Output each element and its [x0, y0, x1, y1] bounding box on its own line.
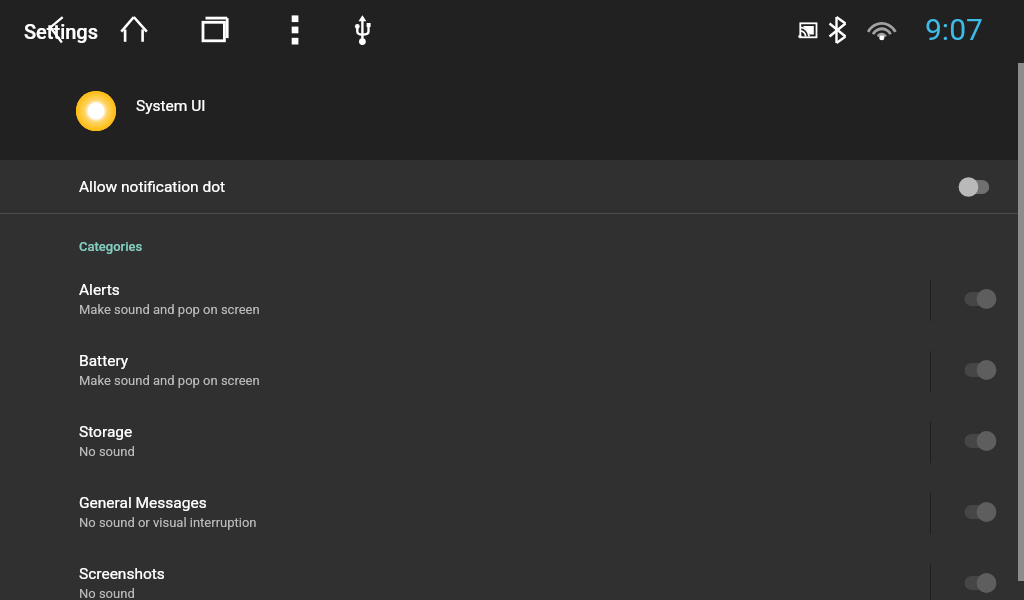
button[interactable]: Alerts: [0, 267, 1024, 338]
staticText: Categories: [79, 239, 143, 254]
button[interactable]: Allow notification dot: [0, 160, 1024, 213]
button[interactable]: Storage toggle, on: [958, 424, 1004, 458]
button[interactable]: Battery: [0, 338, 1024, 409]
staticText: Storage: [79, 423, 133, 441]
button[interactable]: Home: [112, 10, 156, 48]
staticText: No sound: [79, 586, 135, 600]
staticText: Settings: [24, 20, 99, 43]
button[interactable]: Battery toggle, on: [958, 353, 1004, 387]
staticText: System UI: [136, 97, 206, 115]
staticText: No sound or visual interruption: [79, 515, 257, 530]
button[interactable]: Recents: [198, 12, 232, 46]
staticText: 9:07: [925, 12, 983, 47]
staticText: Screenshots: [79, 565, 165, 583]
button[interactable]: Wi-Fi: [866, 16, 896, 44]
staticText: Make sound and pop on screen: [79, 302, 260, 317]
staticText: Alerts: [79, 281, 120, 299]
staticText: General Messages: [79, 494, 207, 512]
staticText: No sound: [79, 444, 135, 459]
staticText: Battery: [79, 352, 129, 370]
button[interactable]: Back: [38, 9, 74, 51]
button[interactable]: General Messages: [0, 480, 1024, 551]
button[interactable]: Screenshots: [0, 551, 1024, 600]
button[interactable]: USB: [350, 12, 376, 48]
button[interactable]: Screenshots toggle, on: [958, 566, 1004, 600]
button[interactable]: Storage: [0, 409, 1024, 480]
button[interactable]: General Messages toggle, on: [958, 495, 1004, 529]
button[interactable]: More options: [283, 12, 307, 48]
button[interactable]: Alerts toggle, on: [958, 282, 1004, 316]
button[interactable]: Cast screen: [794, 18, 822, 42]
staticText: Allow notification dot: [79, 178, 226, 196]
button[interactable]: Bluetooth: [829, 13, 849, 47]
staticText: Make sound and pop on screen: [79, 373, 260, 388]
button[interactable]: Allow notification dot toggle, off: [955, 170, 1001, 204]
